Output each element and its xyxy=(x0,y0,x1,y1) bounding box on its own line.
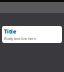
staticText: Title xyxy=(4,28,16,35)
staticText: Body text line here xyxy=(4,36,36,41)
